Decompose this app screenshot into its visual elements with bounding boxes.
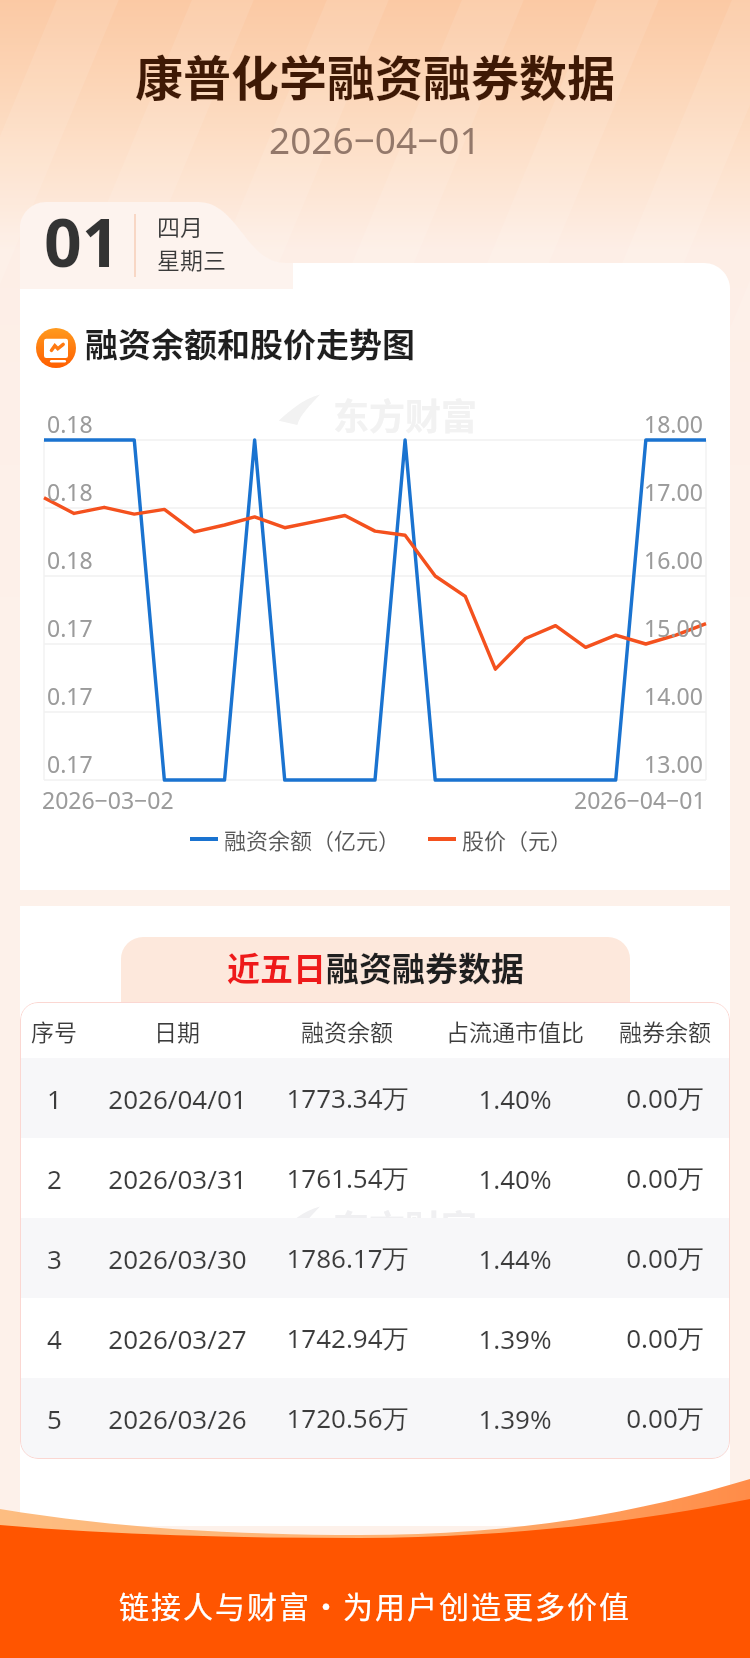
staticText: 1.44% bbox=[478, 1241, 552, 1276]
staticText: 融券余额 bbox=[619, 1014, 711, 1047]
staticText: 15.00 bbox=[644, 612, 703, 643]
staticText: 1720.56万 bbox=[286, 1400, 409, 1436]
staticText: 星期三 bbox=[157, 242, 226, 275]
staticText: 1773.34万 bbox=[286, 1080, 409, 1116]
staticText: 1 bbox=[47, 1081, 62, 1116]
staticText: 1786.17万 bbox=[286, 1240, 409, 1276]
staticText: 01 bbox=[44, 196, 120, 286]
staticText: 2026/04/01 bbox=[108, 1081, 247, 1116]
staticText: 占流通市值比 bbox=[446, 1014, 584, 1047]
staticText: 18.00 bbox=[644, 408, 703, 439]
staticText: 四月 bbox=[157, 209, 203, 242]
staticText: 0.18 bbox=[47, 544, 93, 575]
staticText: 0.17 bbox=[47, 680, 93, 711]
staticText: 14.00 bbox=[644, 680, 703, 711]
staticText: 0.18 bbox=[47, 476, 93, 507]
staticText: 1.39% bbox=[478, 1401, 552, 1436]
button[interactable]: 3 bbox=[20, 1218, 730, 1298]
staticText: 链接人与财富·为用户创造更多价值 bbox=[119, 1583, 631, 1626]
staticText: 0.17 bbox=[47, 612, 93, 643]
staticText: 2026/03/27 bbox=[108, 1321, 247, 1356]
staticText: 17.00 bbox=[644, 476, 703, 507]
staticText: 近五日 bbox=[227, 943, 326, 991]
staticText: 0.00万 bbox=[626, 1080, 704, 1116]
staticText: 序号 bbox=[31, 1014, 77, 1047]
staticText: 0.00万 bbox=[626, 1160, 704, 1196]
staticText: 2026/03/30 bbox=[108, 1241, 247, 1276]
staticText: 0.17 bbox=[47, 748, 93, 779]
button[interactable]: 5 bbox=[20, 1378, 730, 1458]
staticText: 1.39% bbox=[478, 1321, 552, 1356]
button[interactable]: 4 bbox=[20, 1298, 730, 1378]
staticText: 13.00 bbox=[644, 748, 703, 779]
staticText: 4 bbox=[47, 1321, 62, 1356]
staticText: 0.00万 bbox=[626, 1240, 704, 1276]
staticText: 16.00 bbox=[644, 544, 703, 575]
staticText: 股价（元） bbox=[462, 823, 573, 855]
staticText: 0.00万 bbox=[626, 1400, 704, 1436]
staticText: 融资余额（亿元） bbox=[224, 823, 401, 855]
staticText: 1761.54万 bbox=[286, 1160, 409, 1196]
staticText: 1742.94万 bbox=[286, 1320, 409, 1356]
staticText: 3 bbox=[47, 1241, 62, 1276]
staticText: 2026−04−01 bbox=[269, 114, 481, 164]
staticText: 2 bbox=[47, 1161, 62, 1196]
staticText: 东方财富 bbox=[333, 1200, 478, 1252]
button[interactable]: Trend chart bbox=[36, 328, 76, 368]
staticText: 1.40% bbox=[478, 1161, 552, 1196]
staticText: 2026/03/31 bbox=[108, 1161, 247, 1196]
staticText: 5 bbox=[47, 1401, 62, 1436]
button[interactable]: 2 bbox=[20, 1138, 730, 1218]
staticText: 2026/03/26 bbox=[108, 1401, 247, 1436]
staticText: 融资余额和股价走势图 bbox=[85, 319, 415, 367]
staticText: 2026−04−01 bbox=[574, 784, 706, 815]
staticText: 0.18 bbox=[47, 408, 93, 439]
staticText: 0.00万 bbox=[626, 1320, 704, 1356]
staticText: 2026−03−02 bbox=[42, 784, 174, 815]
button[interactable]: 序号 bbox=[20, 1002, 730, 1058]
staticText: 融资融券数据 bbox=[326, 943, 524, 991]
staticText: 日期 bbox=[154, 1014, 200, 1047]
staticText: 1.40% bbox=[478, 1081, 552, 1116]
button[interactable]: 1 bbox=[20, 1058, 730, 1138]
staticText: 东方财富 bbox=[333, 388, 478, 440]
staticText: 融资余额 bbox=[301, 1014, 393, 1047]
staticText: 康普化学融资融券数据 bbox=[135, 40, 616, 110]
